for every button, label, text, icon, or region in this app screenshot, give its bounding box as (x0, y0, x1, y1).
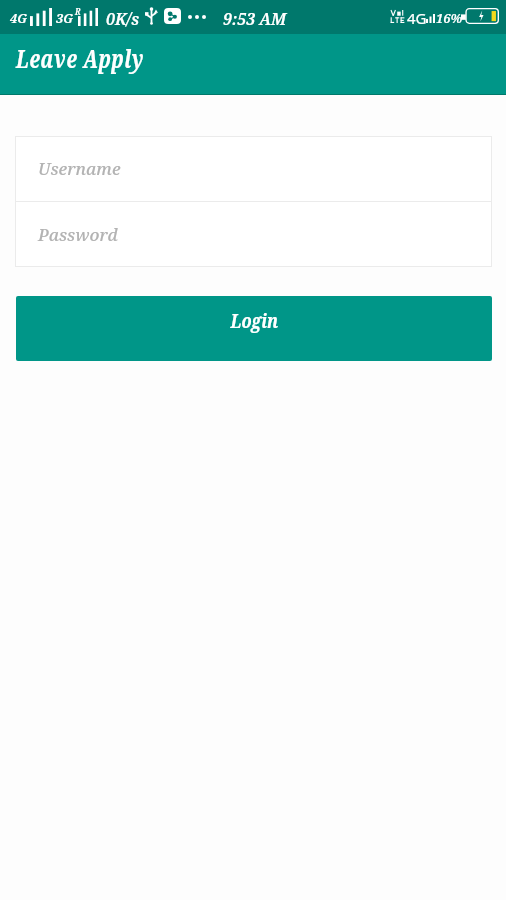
staticText: Password (38, 223, 118, 246)
button[interactable]: Password (15, 202, 492, 266)
button[interactable]: Username (15, 136, 492, 201)
staticText: 4G (407, 8, 427, 28)
staticText: Username (38, 157, 121, 180)
staticText: R (75, 6, 81, 17)
staticText: 3G (56, 9, 74, 27)
staticText: 4G (10, 9, 28, 27)
staticText: 9:53 AM (223, 8, 287, 30)
button[interactable]: Login (16, 296, 492, 361)
staticText: Leave Apply (16, 41, 145, 75)
staticText: 0K/s (106, 8, 140, 30)
staticText: 16% (436, 9, 463, 27)
staticText: Login (231, 308, 278, 334)
